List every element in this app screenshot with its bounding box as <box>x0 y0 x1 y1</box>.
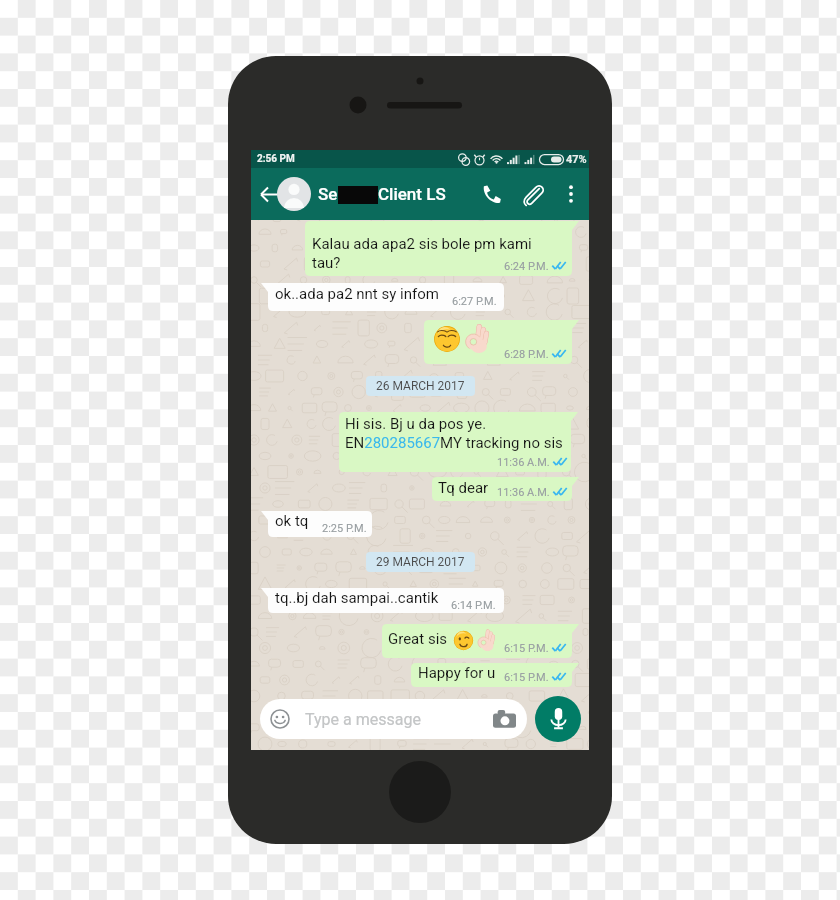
button[interactable]: ok..ada pa2 nnt sy infom <box>261 283 504 311</box>
button[interactable]: Great sis <box>382 624 579 658</box>
button[interactable]: 29 MARCH 2017 <box>366 552 475 572</box>
staticText: 6:24 P.M. <box>504 260 549 273</box>
staticText: 11:36 A.M. <box>497 456 550 469</box>
staticText: 6:14 P.M. <box>451 599 496 612</box>
staticText: 6:15 P.M. <box>504 671 549 684</box>
staticText: ok tq <box>275 512 309 530</box>
staticText: 47% <box>566 153 587 166</box>
button[interactable]: Happy for u <box>411 663 579 687</box>
button[interactable]: Se <box>318 168 446 220</box>
staticText: 6:27 P.M. <box>452 295 497 308</box>
staticText: 2:56 PM <box>257 153 295 165</box>
staticText: ok..ada pa2 nnt sy infom <box>275 285 439 303</box>
button[interactable]: Type a message <box>260 699 527 739</box>
staticText: Client LS <box>378 184 446 204</box>
staticText: Kalau ada apa2 sis bole pm kami tau? <box>312 235 538 272</box>
button[interactable]: 6:28 P.M. <box>424 320 579 364</box>
button[interactable]: Hi sis. Bj u da pos ye. EN280285667MY tr… <box>339 412 578 472</box>
staticText: 6:15 P.M. <box>504 642 549 655</box>
staticText: Happy for u <box>418 664 496 682</box>
button[interactable]: ok tq <box>261 511 372 537</box>
button[interactable]: Record voice message <box>535 696 581 742</box>
staticText: Tq dear <box>438 479 489 497</box>
staticText: 2:25 P.M. <box>322 522 367 535</box>
staticText: 29 MARCH 2017 <box>376 555 465 569</box>
button[interactable]: Profile photo <box>277 177 311 211</box>
staticText: Type a message <box>305 710 493 729</box>
staticText: 6:28 P.M. <box>504 348 549 361</box>
staticText: Hi sis. Bj u da pos ye. EN280285667MY tr… <box>345 415 563 452</box>
staticText: 11:36 A.M. <box>497 486 550 499</box>
staticText: Se <box>318 184 338 204</box>
button[interactable]: Attach <box>514 168 550 220</box>
button[interactable]: Back <box>255 168 283 220</box>
staticText: Great sis <box>388 630 448 648</box>
button[interactable]: tq..bj dah sampai..cantik <box>261 588 504 613</box>
staticText: 26 MARCH 2017 <box>376 379 465 393</box>
button[interactable]: Tq dear <box>432 477 579 501</box>
button[interactable]: More options <box>556 168 586 220</box>
staticText: tq..bj dah sampai..cantik <box>275 589 439 607</box>
button[interactable]: Kalau ada apa2 sis bole pm kami tau? <box>305 221 579 276</box>
button[interactable]: Call <box>474 168 508 220</box>
button[interactable]: 26 MARCH 2017 <box>366 376 475 396</box>
